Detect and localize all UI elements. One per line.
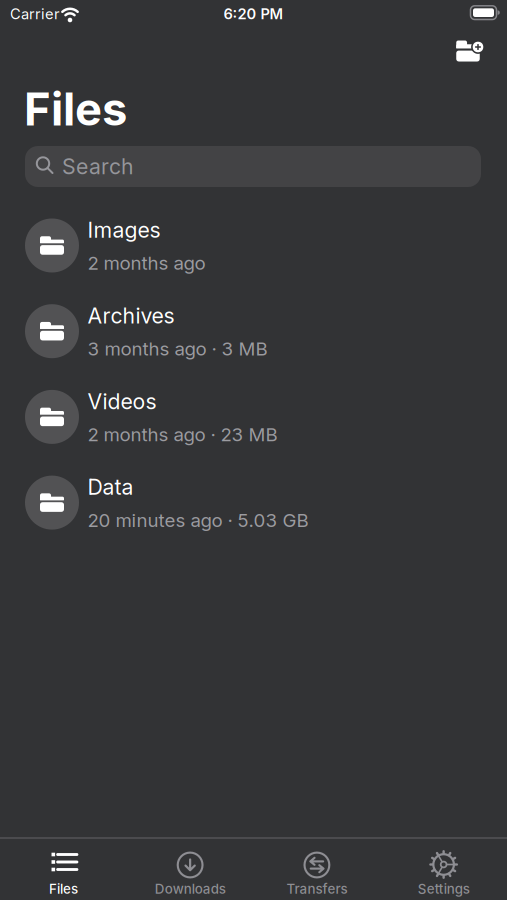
button[interactable]: Files: [0, 838, 127, 900]
staticText: Downloads: [155, 881, 226, 897]
staticText: Files: [49, 881, 78, 897]
button[interactable]: Videos: [0, 374, 507, 460]
button[interactable]: Data: [0, 460, 507, 545]
staticText: Videos: [87, 389, 156, 414]
staticText: Transfers: [286, 881, 347, 897]
button[interactable]: Transfers: [253, 838, 380, 900]
button[interactable]: Search: [25, 146, 481, 187]
button[interactable]: Downloads: [127, 838, 253, 900]
button[interactable]: Images: [0, 203, 507, 288]
staticText: Carrier: [10, 5, 60, 23]
staticText: Images: [87, 217, 160, 243]
button[interactable]: Archives: [0, 288, 507, 374]
staticText: 20 minutes ago · 5.03 GB: [87, 509, 308, 531]
staticText: Settings: [418, 881, 470, 897]
button[interactable]: New Folder: [446, 33, 490, 69]
staticText: Files: [24, 82, 127, 136]
staticText: 2 months ago: [87, 252, 205, 274]
staticText: 6:20 PM: [223, 5, 283, 23]
staticText: Archives: [87, 303, 174, 328]
staticText: 3 months ago · 3 MB: [87, 338, 267, 360]
staticText: Data: [87, 474, 133, 500]
staticText: 2 months ago · 23 MB: [87, 423, 277, 445]
button[interactable]: Settings: [380, 838, 507, 900]
staticText: Search: [62, 154, 134, 179]
